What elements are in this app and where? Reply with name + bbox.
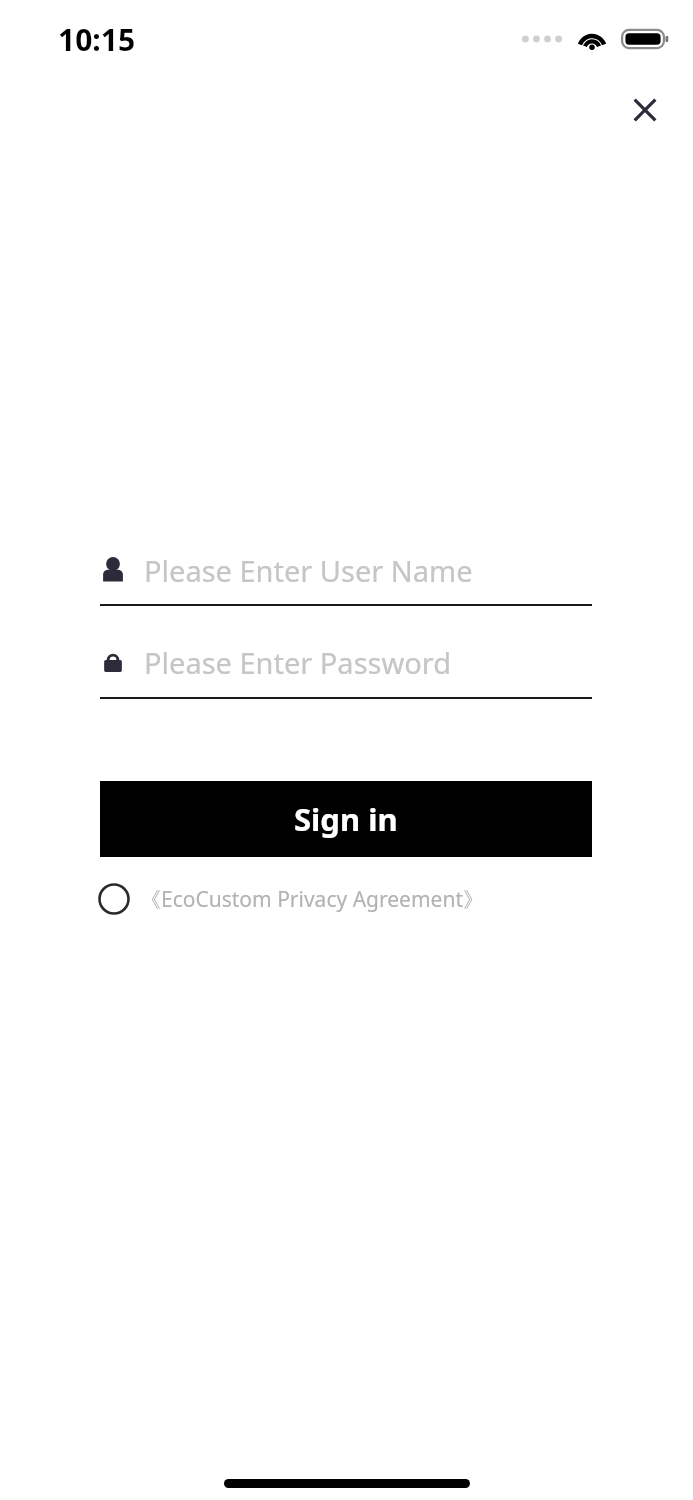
button[interactable]: 《EcoCustom Privacy Agreement》 [96,876,484,922]
staticText: Please Enter User Name [144,551,473,590]
button[interactable]: Sign in [100,781,592,857]
staticText: 10:15 [58,19,136,60]
staticText: 《EcoCustom Privacy Agreement》 [140,885,484,914]
button[interactable]: Please Enter Password [100,626,592,698]
button[interactable]: Close [615,80,675,140]
button[interactable]: Please Enter User Name [100,534,592,606]
staticText: Sign in [294,798,398,840]
staticText: Please Enter Password [144,643,451,682]
